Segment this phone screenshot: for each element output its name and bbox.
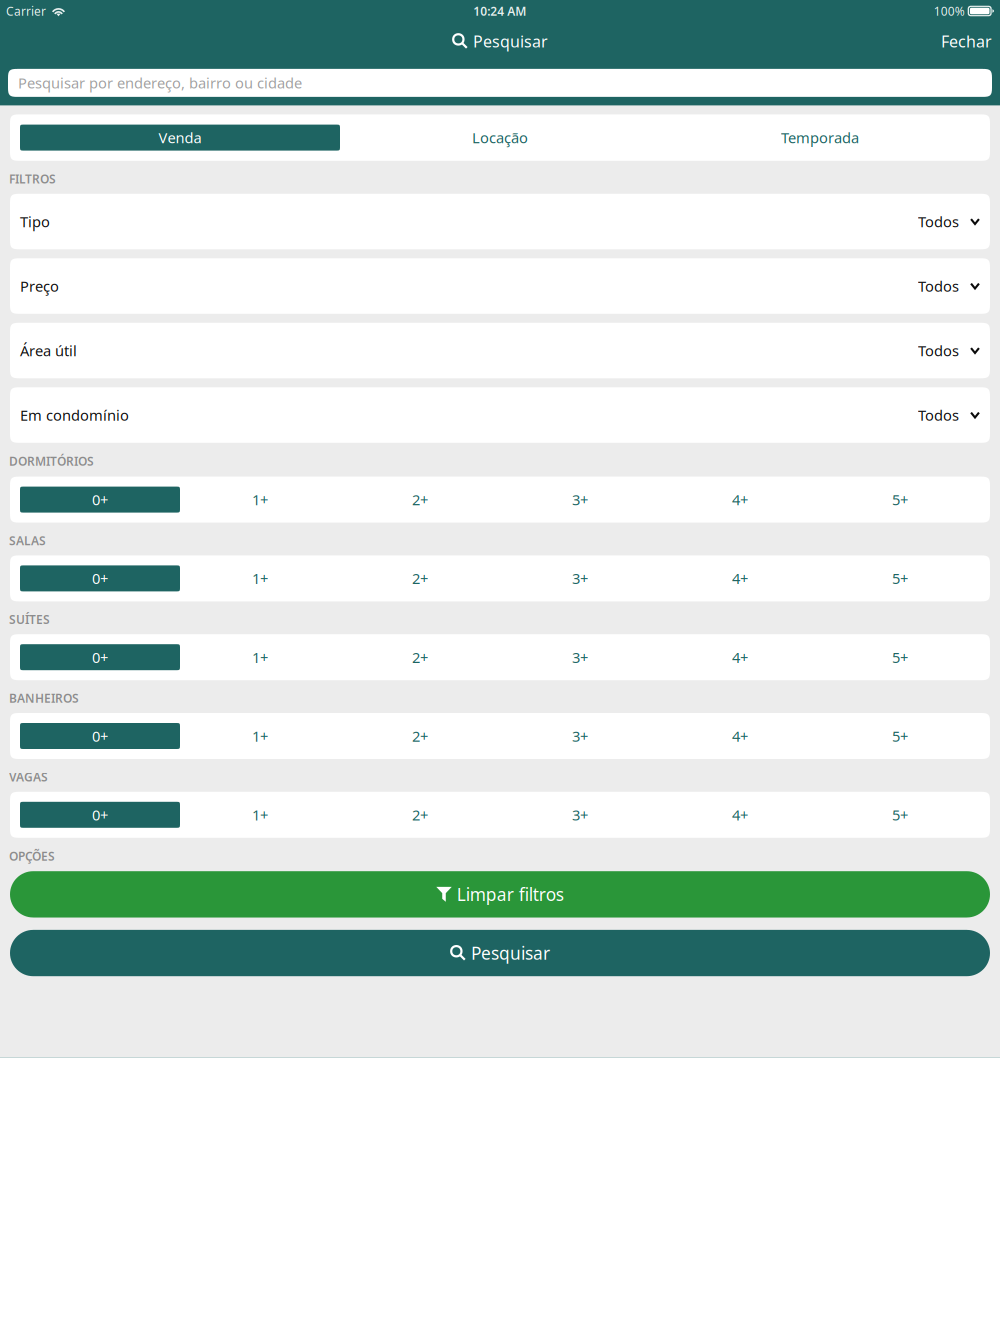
button[interactable]: 3+ xyxy=(500,487,660,513)
button[interactable]: Fechar xyxy=(931,26,1000,56)
staticText: SUÍTES xyxy=(9,611,50,627)
staticText: 4+ xyxy=(732,490,748,509)
staticText: SALAS xyxy=(9,532,46,548)
button[interactable]: 3+ xyxy=(500,723,660,749)
button[interactable]: 1+ xyxy=(180,802,340,828)
staticText: Pesquisar xyxy=(473,31,548,52)
button[interactable]: Tipo xyxy=(0,194,1000,249)
button[interactable]: 0+ xyxy=(20,565,180,591)
staticText: 0+ xyxy=(92,726,108,746)
button[interactable]: 5+ xyxy=(820,565,980,591)
staticText: 4+ xyxy=(732,726,748,746)
staticText: Preço xyxy=(20,276,59,296)
staticText: 5+ xyxy=(892,569,908,588)
staticText: DORMITÓRIOS xyxy=(9,453,94,469)
button[interactable]: 3+ xyxy=(500,802,660,828)
staticText: VAGAS xyxy=(9,769,48,785)
staticText: 10:24 AM xyxy=(473,3,526,19)
staticText: Fechar xyxy=(941,31,992,52)
staticText: 0+ xyxy=(92,805,108,825)
staticText: 100% xyxy=(934,3,965,19)
button[interactable]: 0+ xyxy=(20,723,180,749)
staticText: Em condomínio xyxy=(20,405,129,425)
button[interactable]: 2+ xyxy=(340,723,500,749)
button[interactable]: Locação xyxy=(340,125,660,151)
staticText: 5+ xyxy=(892,490,908,509)
button[interactable]: Pesquisar xyxy=(0,930,1000,976)
staticText: BANHEIROS xyxy=(9,690,79,706)
staticText: 2+ xyxy=(412,805,428,825)
staticText: Tipo xyxy=(20,212,50,231)
button[interactable]: 1+ xyxy=(180,565,340,591)
button[interactable]: 0+ xyxy=(20,802,180,828)
staticText: 3+ xyxy=(572,490,588,509)
staticText: 1+ xyxy=(252,569,268,588)
button[interactable]: Preço xyxy=(0,258,1000,314)
staticText: 2+ xyxy=(412,647,428,667)
staticText: 4+ xyxy=(732,805,748,825)
staticText: 3+ xyxy=(572,726,588,746)
staticText: OPÇÕES xyxy=(9,848,55,864)
button[interactable]: 2+ xyxy=(340,644,500,670)
staticText: 3+ xyxy=(572,569,588,588)
button[interactable]: 1+ xyxy=(180,723,340,749)
staticText: Todos xyxy=(918,341,959,360)
button[interactable]: 1+ xyxy=(180,487,340,513)
staticText: Venda xyxy=(158,128,201,147)
staticText: Todos xyxy=(918,276,959,296)
staticText: Área útil xyxy=(20,341,77,360)
staticText: 0+ xyxy=(92,490,108,509)
button[interactable]: 3+ xyxy=(500,644,660,670)
staticText: Locação xyxy=(472,128,528,147)
button[interactable]: 3+ xyxy=(500,565,660,591)
button[interactable]: Limpar filtros xyxy=(0,871,1000,917)
button[interactable]: Venda xyxy=(20,125,340,151)
staticText: 1+ xyxy=(252,805,268,825)
staticText: 3+ xyxy=(572,805,588,825)
button[interactable]: 2+ xyxy=(340,802,500,828)
staticText: Limpar filtros xyxy=(457,883,564,906)
button[interactable]: 5+ xyxy=(820,644,980,670)
button[interactable]: 2+ xyxy=(340,487,500,513)
staticText: 2+ xyxy=(412,726,428,746)
staticText: 4+ xyxy=(732,647,748,667)
staticText: 1+ xyxy=(252,490,268,509)
button[interactable]: 0+ xyxy=(20,487,180,513)
staticText: 1+ xyxy=(252,647,268,667)
staticText: Pesquisar xyxy=(471,941,550,964)
staticText: 0+ xyxy=(92,569,108,588)
button[interactable]: Temporada xyxy=(660,125,980,151)
staticText: Todos xyxy=(918,405,959,425)
staticText: 1+ xyxy=(252,726,268,746)
staticText: 5+ xyxy=(892,726,908,746)
staticText: 2+ xyxy=(412,490,428,509)
button[interactable]: 4+ xyxy=(660,644,820,670)
button[interactable]: 0+ xyxy=(20,644,180,670)
button[interactable]: Área útil xyxy=(0,323,1000,378)
button[interactable]: 4+ xyxy=(660,565,820,591)
button[interactable]: 4+ xyxy=(660,802,820,828)
staticText: 4+ xyxy=(732,569,748,588)
button[interactable]: 5+ xyxy=(820,802,980,828)
button[interactable]: Em condomínio xyxy=(0,387,1000,443)
staticText: 5+ xyxy=(892,805,908,825)
staticText: Temporada xyxy=(781,128,859,147)
staticText: 2+ xyxy=(412,569,428,588)
button[interactable]: 2+ xyxy=(340,565,500,591)
staticText: FILTROS xyxy=(9,171,56,187)
staticText: 5+ xyxy=(892,647,908,667)
button[interactable]: 1+ xyxy=(180,644,340,670)
staticText: Carrier xyxy=(6,3,46,19)
button[interactable]: 4+ xyxy=(660,487,820,513)
staticText: Pesquisar por endereço, bairro ou cidade xyxy=(18,73,302,93)
staticText: 0+ xyxy=(92,647,108,667)
staticText: 3+ xyxy=(572,647,588,667)
staticText: Todos xyxy=(918,212,959,231)
button[interactable]: 4+ xyxy=(660,723,820,749)
button[interactable]: 5+ xyxy=(820,487,980,513)
button[interactable]: 5+ xyxy=(820,723,980,749)
